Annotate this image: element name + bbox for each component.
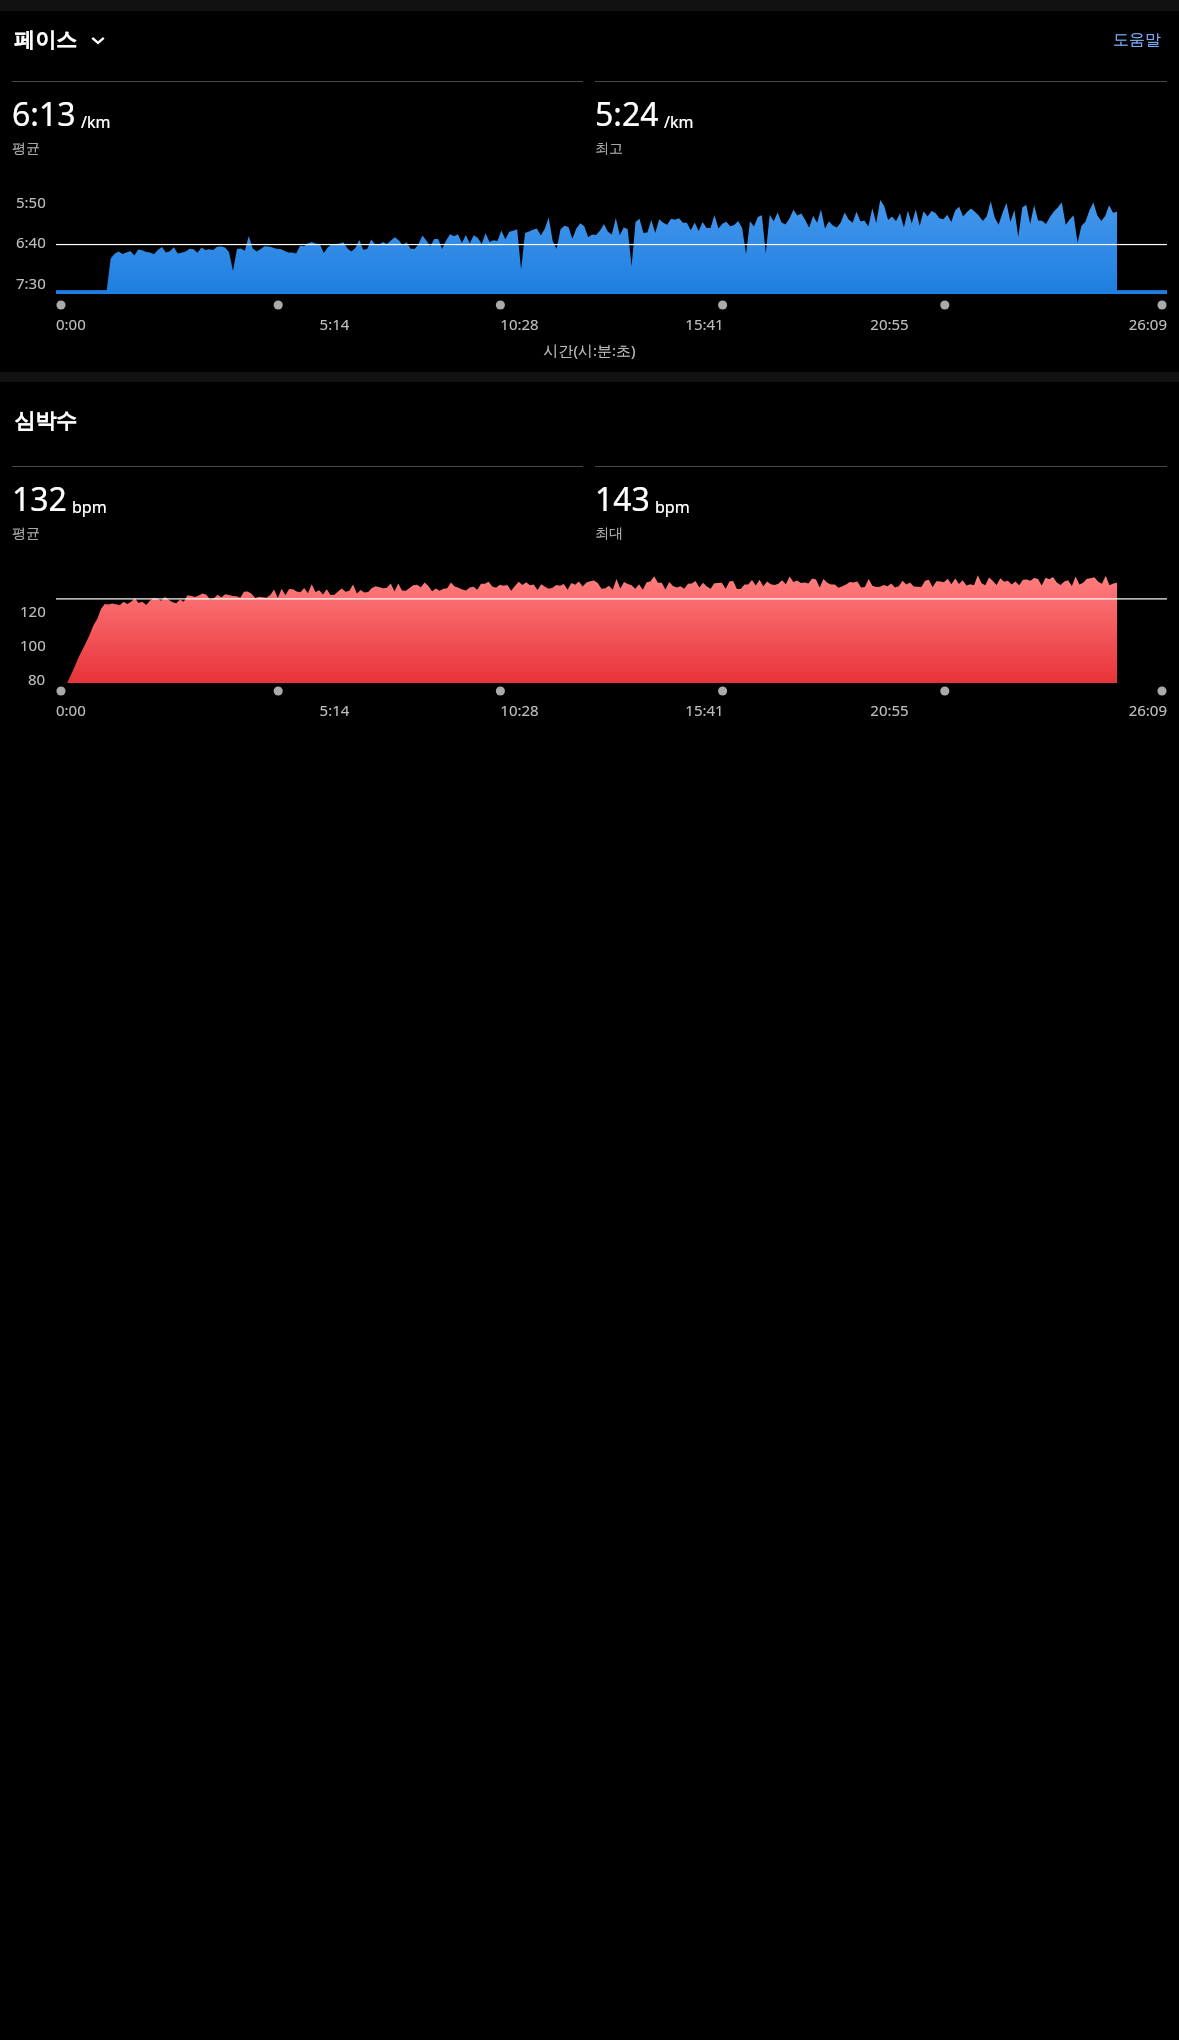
staticText: 143 (595, 477, 650, 521)
staticText: 시간(시:분:초) (0, 340, 1179, 360)
button[interactable]: 페이스 (12, 21, 109, 59)
staticText: 7:30 (16, 273, 46, 293)
staticText: 페이스 (14, 27, 77, 53)
staticText: 15:41 (612, 314, 797, 334)
staticText: 평균 (12, 525, 40, 543)
staticText: 5:14 (242, 700, 427, 720)
staticText: 100 (20, 635, 46, 655)
staticText: 26:09 (982, 314, 1167, 334)
staticText: 6:13 (12, 92, 76, 136)
staticText: bpm (72, 496, 107, 518)
staticText: 0:00 (56, 314, 242, 334)
staticText: 6:40 (16, 232, 46, 252)
staticText: 5:14 (242, 314, 427, 334)
staticText: 0:00 (56, 700, 242, 720)
staticText: 5:50 (16, 192, 46, 211)
staticText: 최고 (595, 140, 623, 158)
staticText: 20:55 (797, 700, 982, 720)
button[interactable]: 도움말 (1107, 24, 1167, 56)
button[interactable]: 6:13 (12, 81, 583, 158)
staticText: /km (81, 111, 111, 133)
button[interactable]: 심박수 (12, 404, 79, 438)
staticText: 15:41 (612, 700, 797, 720)
button[interactable]: 143 (595, 466, 1167, 543)
staticText: 도움말 (1113, 30, 1161, 50)
staticText: 5:24 (595, 92, 659, 136)
staticText: 10:28 (427, 700, 612, 720)
button[interactable]: 132 (12, 466, 583, 543)
staticText: 심박수 (14, 408, 77, 434)
staticText: /km (664, 111, 694, 133)
staticText: 26:09 (982, 700, 1167, 720)
staticText: 20:55 (797, 314, 982, 334)
button[interactable]: 5:24 (595, 81, 1167, 158)
staticText: 최대 (595, 525, 623, 543)
staticText: 80 (28, 669, 46, 689)
staticText: 120 (20, 601, 46, 621)
staticText: 132 (12, 477, 67, 521)
staticText: bpm (655, 496, 690, 518)
staticText: 10:28 (427, 314, 612, 334)
staticText: 평균 (12, 140, 40, 158)
